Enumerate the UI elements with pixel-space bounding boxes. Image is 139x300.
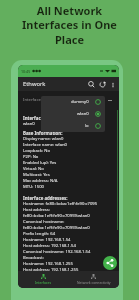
staticText: Broadcast: (23, 255, 44, 261)
button[interactable]: Search (86, 79, 97, 90)
staticText: All Network Interfaces in One Place (22, 3, 117, 48)
staticText: Hostname: fe80::bcba:1eff:fe90:c7095 (23, 201, 98, 207)
staticText: wlan0 (23, 121, 35, 127)
staticText: lo (85, 123, 89, 129)
button[interactable]: More options (108, 80, 117, 89)
button[interactable]: Refresh (97, 79, 108, 90)
staticText: Network connectivity (77, 280, 111, 285)
staticText: Host address: 192.168.1.255 (23, 267, 79, 271)
staticText: Interfaces (35, 280, 52, 285)
staticText: Interface (23, 97, 41, 103)
staticText: wlan0 (77, 111, 89, 117)
staticText: Base Information: (23, 130, 63, 136)
staticText: Hostname: 192.168.1.54 (23, 237, 71, 243)
staticText: Interface addresses: (23, 195, 68, 201)
staticText: Loopback: No (23, 148, 50, 154)
staticText: fe80::bcba:1eff:fe90:c7095%wlan0 (23, 225, 90, 231)
staticText: Canonical hostname: (23, 219, 65, 225)
staticText: Enabled (up): Yes (23, 160, 57, 166)
staticText: fe80::bcba:1eff:fe90:c7095%wlan0 (23, 213, 90, 219)
staticText: 10:45 (21, 69, 31, 74)
staticText: P2P: No (23, 154, 39, 160)
button[interactable]: Network connectivity (68, 271, 119, 288)
button[interactable]: dummy0 (41, 96, 105, 108)
button[interactable]: Share (103, 256, 117, 270)
staticText: Host address: 192.168.1.54 (23, 243, 76, 249)
staticText: Virtual: No (23, 166, 44, 172)
button[interactable]: Interface (23, 97, 117, 103)
staticText: Interface (23, 115, 44, 121)
staticText: MTU: 1500 (23, 184, 44, 190)
staticText: Canonical hostname: 192.168.1.54 (23, 249, 91, 255)
staticText: Ethwork (23, 80, 46, 88)
staticText: Hostname: 192.168.1.255 (23, 261, 73, 267)
staticText: dummy0 (71, 99, 89, 105)
staticText: Interface name: wlan0 (23, 142, 67, 148)
staticText: Display name: wlan0 (23, 136, 64, 142)
button[interactable]: lo (41, 120, 105, 132)
staticText: Multicast: Yes (23, 172, 50, 178)
button[interactable]: Interfaces (18, 271, 68, 288)
button[interactable]: wlan0 (41, 108, 105, 120)
staticText: Prefix length: 64 (23, 231, 56, 237)
staticText: Mac address: N/A (23, 178, 58, 184)
staticText: Host address: (23, 207, 50, 213)
